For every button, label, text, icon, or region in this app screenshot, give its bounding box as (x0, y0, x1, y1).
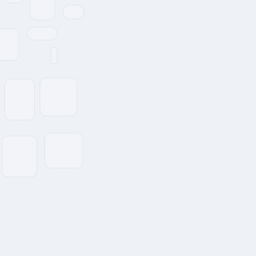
button[interactable]: Breathe (51, 47, 57, 63)
button[interactable]: Activity (4, 0, 24, 3)
button[interactable]: Heart Rate (63, 5, 84, 19)
